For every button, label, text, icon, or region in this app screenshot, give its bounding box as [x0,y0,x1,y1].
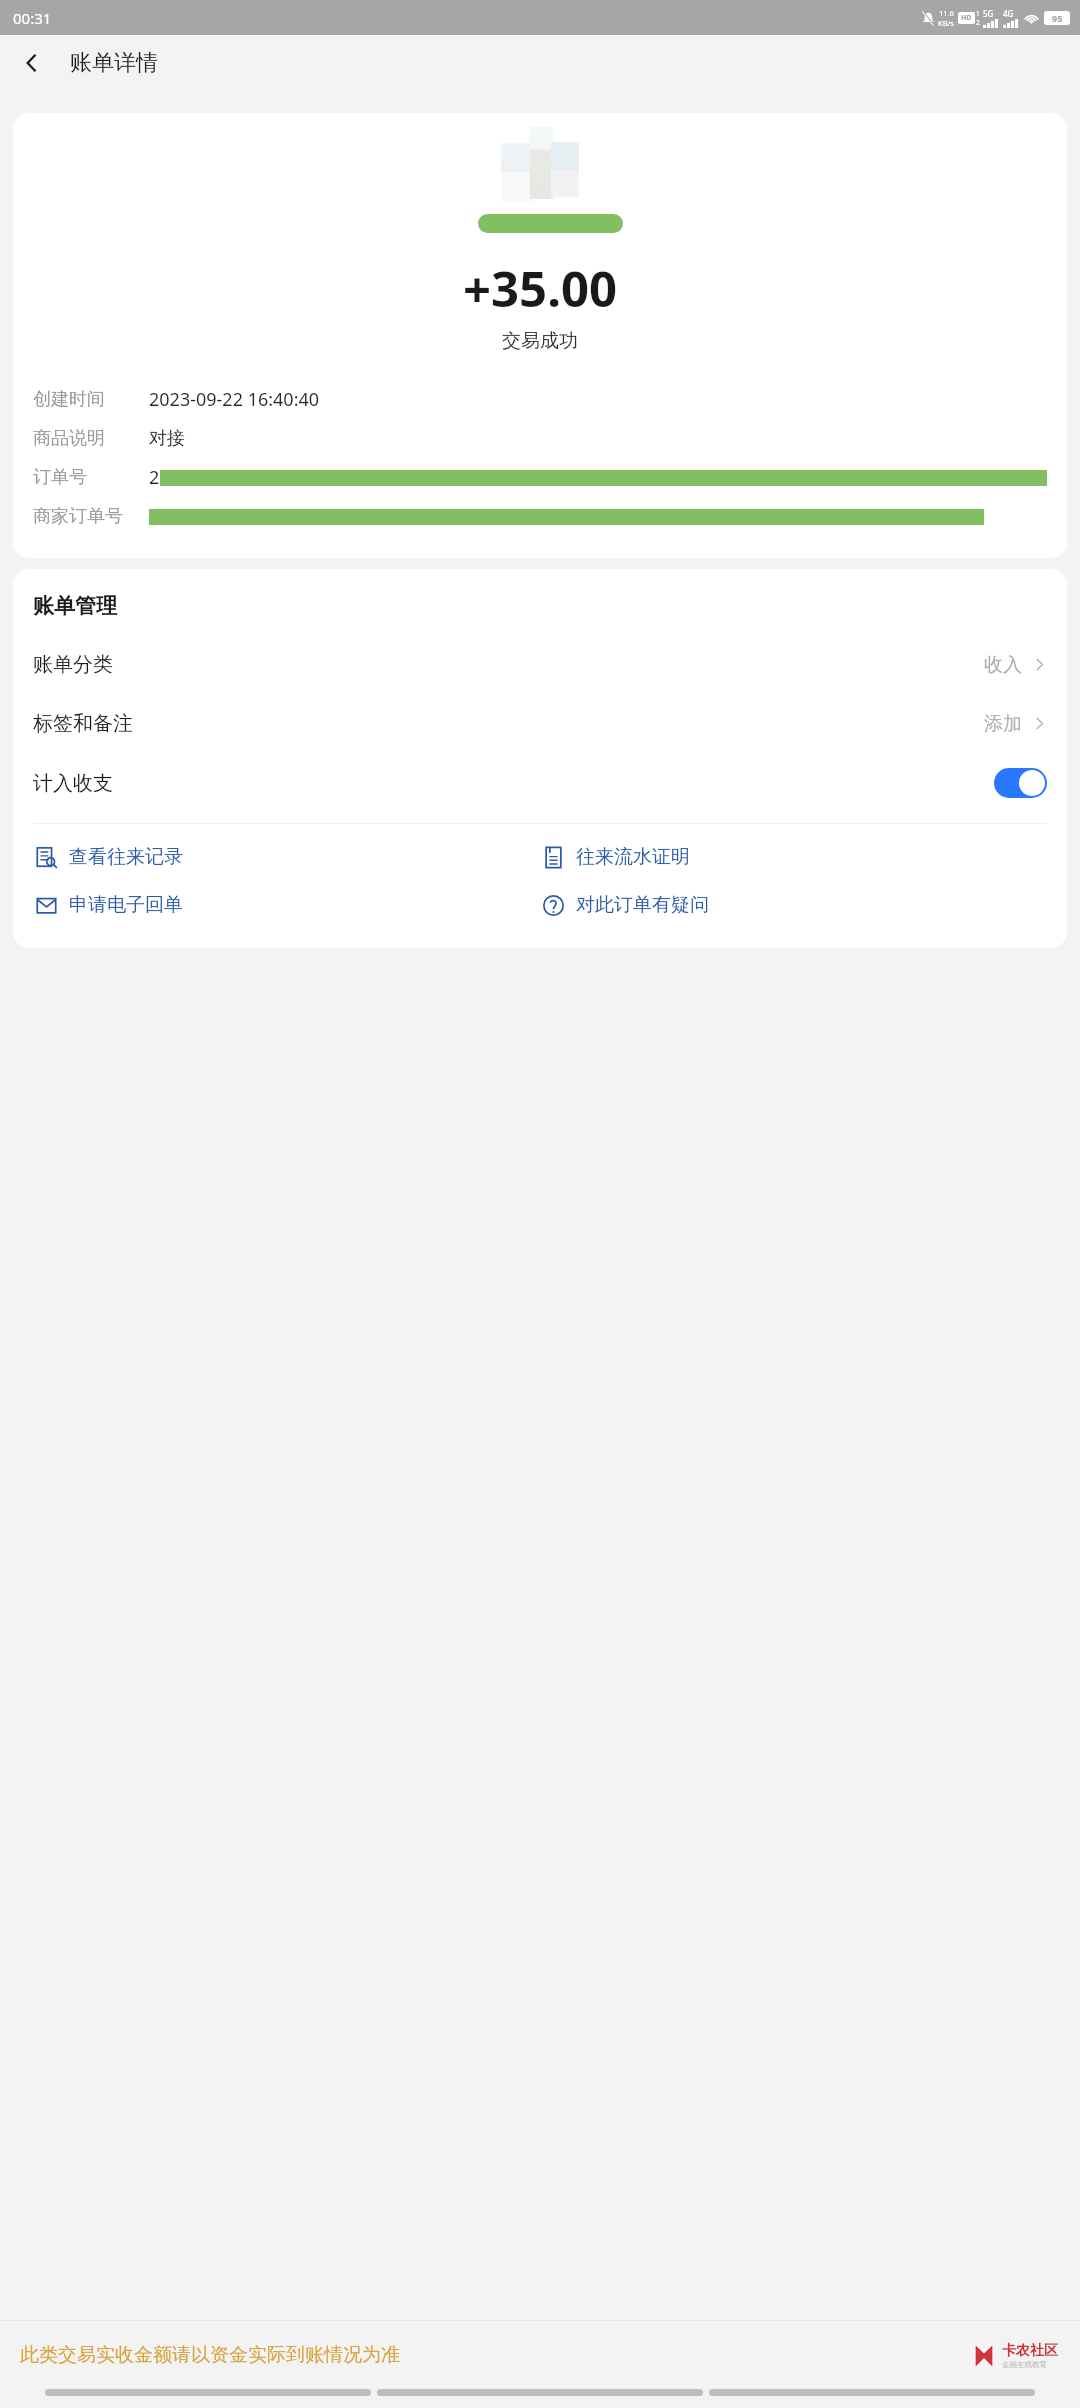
button[interactable]: Back [8,39,56,87]
staticText: 计入收支 [33,771,113,796]
staticText: HD [961,13,972,23]
button[interactable]: 往来流水证明 [540,844,1047,870]
staticText: 5G [983,8,994,19]
staticText: 账单详情 [70,49,158,77]
staticText: 订单号 [33,466,87,489]
staticText: 商家订单号 [33,505,123,528]
staticText: 卡农社区 [1002,2342,1058,2360]
staticText: 95 [1052,12,1063,24]
staticText: 账单分类 [33,652,113,677]
button[interactable]: 账单分类 [13,635,1067,694]
staticText: +35.00 [13,255,1067,322]
staticText: 商品说明 [33,427,105,450]
staticText: 申请电子回单 [69,893,183,917]
staticText: 交易成功 [13,329,1067,353]
staticText: 往来流水证明 [576,845,690,869]
staticText: 收入 [984,653,1022,677]
staticText: 11.6 [939,8,954,18]
staticText: 1 [976,9,980,18]
button[interactable]: 计入收支 [13,753,1067,813]
button[interactable]: 标签和备注 [13,694,1067,753]
staticText: 添加 [984,712,1022,736]
button[interactable]: 申请电子回单 [33,892,540,918]
staticText: 2 [976,18,980,27]
staticText: 创建时间 [33,388,105,411]
staticText: 4G [1003,8,1014,19]
button[interactable]: 对此订单有疑问 [540,892,1047,918]
staticText: 2 [149,465,160,490]
staticText: KB/s [938,18,954,28]
staticText: 2023-09-22 16:40:40 [149,387,320,412]
staticText: 00:31 [13,8,52,28]
staticText: 标签和备注 [33,711,133,736]
staticText: 查看往来记录 [69,845,183,869]
staticText: 账单管理 [33,593,117,619]
staticText: 金融在线教育 [1002,2360,1047,2369]
staticText: 对接 [149,427,185,450]
staticText: 对此订单有疑问 [576,893,709,917]
staticText: 此类交易实收金额请以资金实际到账情况为准 [20,2343,400,2367]
button[interactable]: 查看往来记录 [33,844,540,870]
